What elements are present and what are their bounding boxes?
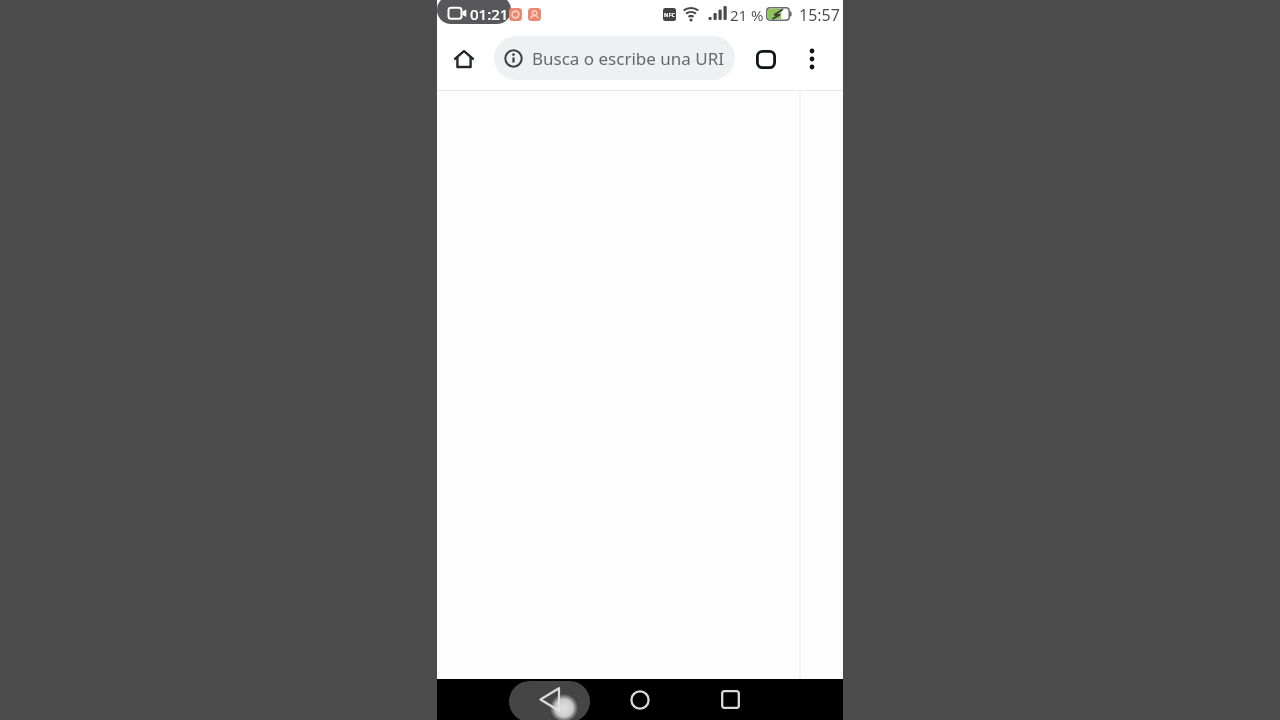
button[interactable]: [745, 38, 787, 80]
staticText: 21 %: [730, 5, 764, 25]
staticText: 15:57: [799, 4, 840, 26]
staticText: NFC: [664, 11, 676, 18]
button[interactable]: Busca o escribe una URI: [494, 36, 735, 80]
staticText: 01:21: [470, 4, 509, 24]
staticText: Busca o escribe una URI: [532, 47, 725, 70]
button[interactable]: [791, 38, 833, 80]
button[interactable]: [450, 45, 478, 73]
button[interactable]: [709, 679, 751, 720]
button[interactable]: [529, 679, 571, 720]
button[interactable]: [619, 679, 661, 720]
